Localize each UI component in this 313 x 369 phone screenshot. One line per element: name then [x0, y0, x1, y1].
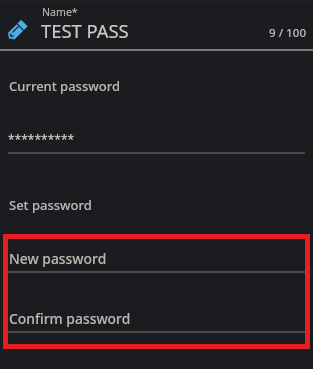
staticText: ********** — [8, 131, 75, 147]
staticText: Name* — [42, 5, 78, 19]
button[interactable]: Edit name — [0, 0, 40, 50]
staticText: TEST PASS — [41, 18, 129, 43]
staticText: Set password — [9, 196, 92, 214]
staticText: New password — [9, 249, 107, 268]
staticText: Confirm password — [9, 309, 131, 328]
staticText: Current password — [9, 77, 120, 95]
staticText: 9 / 100 — [269, 25, 307, 41]
